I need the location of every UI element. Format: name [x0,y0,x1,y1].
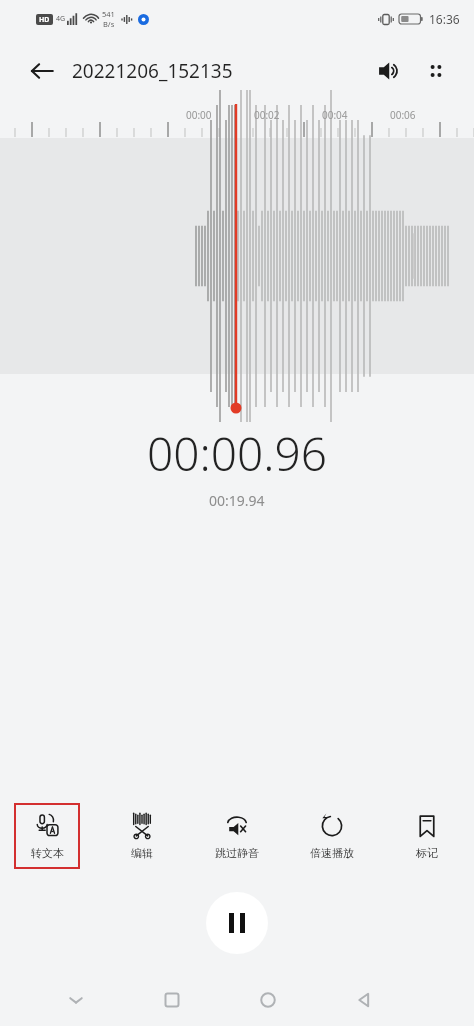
staticText: 00:04 [322,108,348,122]
staticText: 转文本 [31,846,64,860]
staticText: 倍速播放 [310,846,354,860]
staticText: B/s [103,19,115,29]
staticText: HD [39,15,50,25]
staticText: 00:02 [254,108,280,122]
staticText: 00:06 [390,108,416,122]
staticText: 00:00 [186,108,212,122]
button[interactable]: 倍速播放 [299,803,365,869]
staticText: 标记 [416,846,438,860]
button[interactable]: 编辑 [109,803,175,869]
button[interactable]: Home [220,974,316,1026]
staticText: 16:36 [429,11,460,27]
button[interactable]: Volume [370,51,410,91]
button[interactable]: 转文本 [14,803,80,869]
button[interactable]: Back [316,974,412,1026]
staticText: 00:19.94 [209,491,265,510]
button[interactable]: Hide keyboard [28,974,124,1026]
button[interactable]: Back [22,51,62,91]
button[interactable]: Recents [124,974,220,1026]
staticText: 编辑 [131,846,153,860]
button[interactable]: 跳过静音 [204,803,270,869]
staticText: 跳过静音 [215,846,259,860]
staticText: 4G [56,14,66,24]
button[interactable]: More options [416,51,456,91]
staticText: 20221206_152135 [72,58,233,84]
button[interactable]: Pause [206,892,268,954]
staticText: 00:00.96 [147,422,328,485]
button[interactable]: 标记 [394,803,460,869]
staticText: 541 [102,9,115,19]
